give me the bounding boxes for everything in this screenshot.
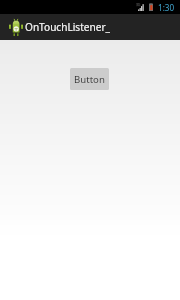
staticText: Button	[74, 73, 105, 86]
staticText: 1:30	[158, 2, 175, 13]
staticText: OnTouchListener_	[25, 20, 111, 34]
button[interactable]: OnTouchListener_	[0, 14, 112, 40]
other: Battery low	[149, 3, 153, 11]
other: Mobile signal 3G	[136, 3, 144, 11]
button[interactable]: Button	[70, 68, 109, 90]
